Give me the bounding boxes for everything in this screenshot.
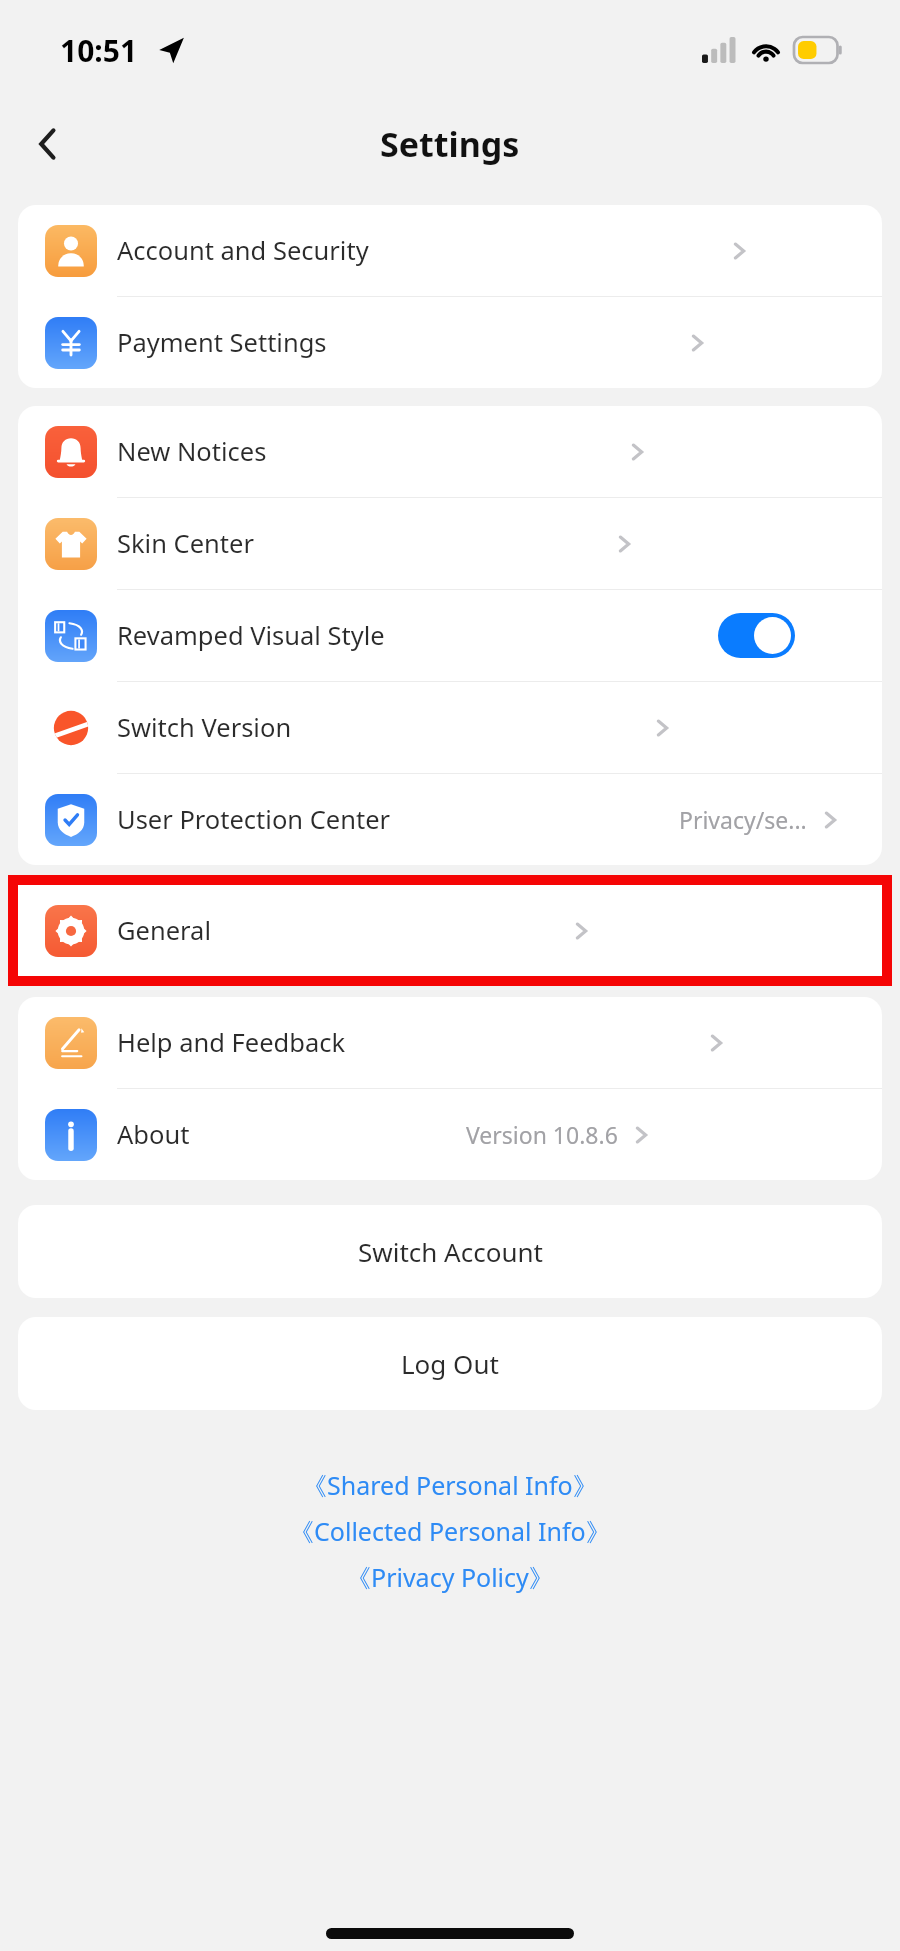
staticText: 《Shared Personal Info》: [302, 1468, 598, 1502]
button[interactable]: Switch Account: [18, 1205, 882, 1298]
button[interactable]: 《Collected Personal Info》: [289, 1514, 611, 1548]
staticText: Payment Settings: [117, 325, 327, 360]
button[interactable]: 《Privacy Policy》: [346, 1560, 554, 1594]
button[interactable]: Switch Version: [18, 682, 882, 773]
button[interactable]: Skin Center: [18, 498, 882, 589]
staticText: General: [117, 913, 211, 948]
button[interactable]: Account and Security: [18, 205, 882, 296]
staticText: Account and Security: [117, 233, 369, 268]
staticText: Version 10.8.6: [466, 1119, 618, 1150]
button[interactable]: Revamped Visual Style: [18, 590, 882, 681]
button[interactable]: New Notices: [18, 406, 882, 497]
staticText: 《Privacy Policy》: [346, 1560, 554, 1594]
staticText: Log Out: [401, 1346, 499, 1381]
staticText: 10:51: [60, 30, 138, 71]
button[interactable]: Back: [18, 114, 78, 174]
staticText: Switch Account: [358, 1234, 543, 1269]
staticText: Skin Center: [117, 526, 254, 561]
staticText: Settings: [380, 121, 520, 167]
staticText: Privacy/se...: [679, 804, 807, 835]
staticText: Switch Version: [117, 710, 292, 745]
button[interactable]: User Protection Center: [18, 774, 882, 865]
button[interactable]: Help and Feedback: [18, 997, 882, 1088]
staticText: 《Collected Personal Info》: [289, 1514, 611, 1548]
button[interactable]: Revamped Visual Style toggle, on: [718, 613, 795, 658]
button[interactable]: Log Out: [18, 1317, 882, 1410]
button[interactable]: About: [18, 1089, 882, 1180]
button[interactable]: Payment Settings: [18, 297, 882, 388]
staticText: New Notices: [117, 434, 267, 469]
staticText: Help and Feedback: [117, 1025, 346, 1060]
staticText: User Protection Center: [117, 802, 391, 837]
staticText: Revamped Visual Style: [117, 618, 385, 653]
staticText: About: [117, 1117, 190, 1152]
button[interactable]: General: [18, 885, 882, 976]
button[interactable]: 《Shared Personal Info》: [302, 1468, 598, 1502]
